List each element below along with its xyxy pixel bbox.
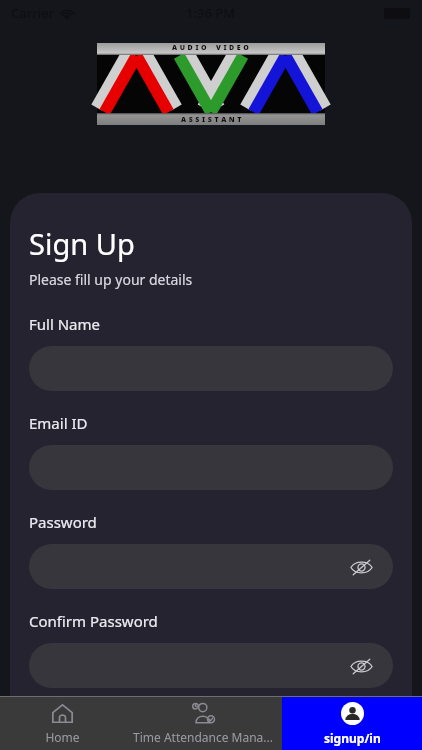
staticText: signup/in (324, 730, 381, 746)
staticText: Time Attendance Mana... (133, 729, 273, 745)
staticText: Full Name (29, 314, 100, 334)
button[interactable]: Home (0, 697, 124, 750)
staticText: A S S I S T A N T (181, 115, 242, 125)
button[interactable] (29, 445, 393, 490)
button[interactable]: Toggle password visibility (29, 544, 393, 589)
staticText: Home (45, 729, 80, 745)
button[interactable]: Toggle password visibility (29, 643, 393, 688)
button[interactable]: Toggle password visibility (346, 651, 376, 681)
staticText: Please fill up your details (29, 270, 193, 289)
staticText: Sign Up (29, 224, 135, 263)
staticText: Confirm Password (29, 611, 158, 631)
button[interactable]: signup/in (282, 697, 422, 750)
staticText: Password (29, 512, 97, 532)
button[interactable]: Time Attendance Mana... (124, 697, 282, 750)
button[interactable]: Toggle password visibility (346, 552, 376, 582)
button[interactable] (29, 346, 393, 391)
staticText: A U D I O V I D E O (172, 43, 250, 53)
staticText: Email ID (29, 413, 88, 433)
